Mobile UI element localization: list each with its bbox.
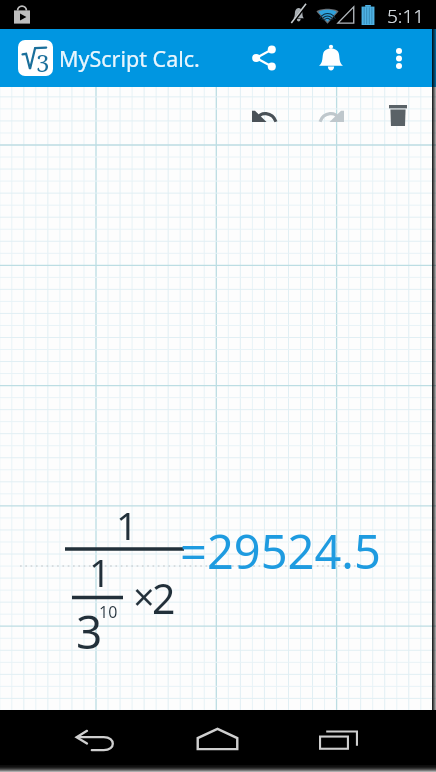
- staticText: 5:11: [387, 3, 425, 29]
- button[interactable]: Notifications: [307, 29, 354, 87]
- button[interactable]: Delete: [375, 92, 421, 138]
- staticText: 2: [152, 570, 176, 626]
- button[interactable]: Undo: [241, 93, 287, 139]
- staticText: 1: [89, 546, 111, 598]
- staticText: ×: [133, 570, 155, 622]
- staticText: =29524.5: [180, 519, 381, 583]
- staticText: 3: [76, 600, 103, 663]
- button[interactable]: Recents: [301, 717, 375, 762]
- staticText: 1: [116, 499, 138, 551]
- button[interactable]: Back: [58, 718, 132, 763]
- button[interactable]: Home: [180, 716, 254, 761]
- staticText: 3: [36, 46, 50, 76]
- button[interactable]: 3: [18, 40, 53, 76]
- staticText: MyScript Calc.: [59, 44, 200, 73]
- button[interactable]: Share: [240, 29, 287, 87]
- staticText: 10: [99, 601, 118, 623]
- button[interactable]: More options: [375, 29, 422, 87]
- button[interactable]: Redo: [308, 93, 354, 139]
